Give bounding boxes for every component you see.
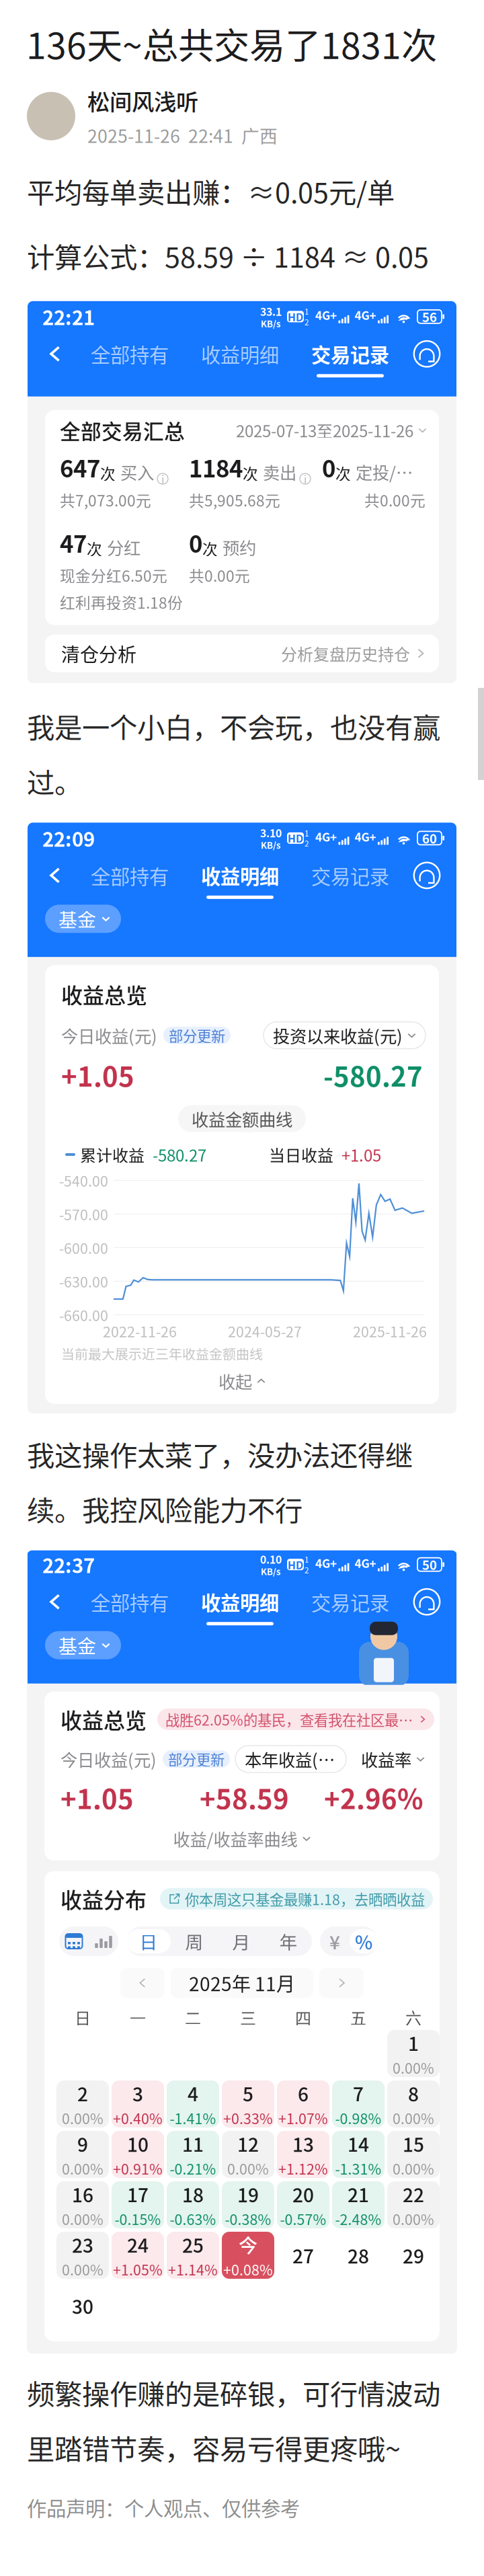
staticText: -0.57% — [280, 2208, 326, 2229]
staticText: KB/s — [261, 838, 281, 851]
button[interactable]: 返回 — [36, 334, 75, 374]
staticText: 收益分布 — [61, 1883, 147, 1914]
staticText: 全部交易汇总 — [60, 415, 185, 445]
staticText: 1 — [305, 306, 309, 317]
staticText: 共5,905.68元 — [189, 489, 280, 511]
staticText: 你本周这只基金最赚1.18，去晒晒收益 — [185, 1888, 425, 1909]
button[interactable]: % — [350, 1929, 378, 1953]
staticText: 16 — [72, 2180, 93, 2208]
button[interactable]: 你本周这只基金最赚1.18，去晒晒收益 — [160, 1888, 433, 1910]
button[interactable]: 战胜62.05%的基民，查看我在社区最新排名 — [157, 1709, 434, 1730]
staticText: 次 — [100, 462, 116, 484]
button[interactable]: 收益明细 — [197, 1582, 283, 1622]
staticText: -1.41% — [170, 2108, 216, 2128]
staticText: 日 — [75, 2006, 91, 2029]
button[interactable]: 投资以来收益(元) — [264, 1022, 426, 1049]
staticText: 现金分红6.50元 — [60, 564, 167, 586]
staticText: -0.15% — [115, 2208, 161, 2229]
staticText: 0.00% — [393, 2057, 434, 2078]
button[interactable]: 清仓分析 — [45, 635, 439, 672]
staticText: 4G+ — [315, 306, 337, 323]
button[interactable]: 交易记录 — [307, 334, 393, 374]
staticText: 次 — [87, 537, 102, 559]
button[interactable]: 柱状图视图 — [89, 1928, 118, 1955]
staticText: ¥ — [329, 1928, 340, 1955]
staticText: 月 — [232, 1928, 250, 1954]
staticText: KB/s — [261, 1565, 281, 1578]
staticText: +58.59 — [200, 1778, 289, 1817]
button[interactable]: 全部持有 — [87, 334, 173, 374]
staticText: -0.63% — [170, 2208, 216, 2229]
staticText: 0.00% — [393, 2208, 434, 2229]
staticText: 19 — [237, 2180, 259, 2208]
button[interactable]: 收益/收益率曲线 — [173, 1826, 311, 1851]
staticText: +2.96% — [324, 1778, 424, 1817]
staticText: 11 — [182, 2130, 204, 2157]
button[interactable]: 日 — [126, 1929, 171, 1953]
button[interactable]: 收益率 — [361, 1747, 425, 1771]
staticText: 买入 — [120, 459, 154, 484]
staticText: 交易记录 — [311, 861, 389, 890]
button[interactable]: ¥ — [320, 1928, 350, 1955]
button[interactable]: 全部持有 — [87, 1582, 173, 1622]
staticText: 交易记录 — [311, 340, 389, 368]
button[interactable]: 交易记录 — [307, 855, 393, 896]
staticText: 13 — [292, 2130, 314, 2157]
staticText: 12 — [237, 2130, 259, 2157]
button[interactable]: 收益金额曲线 — [178, 1105, 306, 1132]
button[interactable]: 在线客服 — [409, 334, 444, 374]
staticText: 今日收益(元) — [61, 1023, 157, 1048]
staticText: 4G+ — [355, 1554, 376, 1571]
staticText: 共7,073.00元 — [60, 489, 151, 511]
staticText: 日 — [139, 1928, 158, 1954]
button[interactable]: 上个月 — [120, 1968, 165, 1998]
staticText: 次 — [335, 462, 351, 484]
button[interactable]: 周 — [171, 1928, 218, 1955]
button[interactable]: 在线客服 — [409, 855, 444, 896]
button[interactable]: 返回 — [36, 855, 75, 896]
button[interactable]: 全部持有 — [87, 855, 173, 896]
button[interactable]: 收起 — [218, 1369, 266, 1393]
staticText: 50 — [422, 1555, 437, 1574]
staticText: 9 — [77, 2130, 88, 2157]
button[interactable]: 收益明细 — [197, 855, 283, 896]
staticText: 0.00% — [62, 2158, 104, 2179]
staticText: 清仓分析 — [61, 640, 136, 667]
staticText: 29 — [403, 2242, 424, 2269]
button[interactable]: 基金 — [45, 1631, 121, 1659]
staticText: -570.00 — [59, 1204, 108, 1224]
staticText: -540.00 — [59, 1170, 108, 1191]
staticText: 四 — [295, 2006, 311, 2029]
staticText: 1 — [305, 1553, 309, 1565]
staticText: 卖出 — [263, 459, 296, 484]
staticText: 六 — [405, 2006, 421, 2029]
staticText: 22:09 — [42, 824, 95, 852]
button[interactable]: 2025-07-13至2025-11-26 — [236, 419, 427, 442]
staticText: 5 — [243, 2080, 253, 2107]
staticText: 续。我控风险能力不行 — [27, 1489, 302, 1529]
staticText: 年 — [279, 1928, 297, 1954]
staticText: 全部持有 — [91, 340, 169, 368]
staticText: +1.05 — [61, 1778, 134, 1817]
button[interactable]: 月 — [218, 1928, 265, 1955]
staticText: 25 — [182, 2231, 204, 2258]
staticText: 33.1 — [260, 303, 282, 319]
staticText: 647 — [60, 450, 100, 484]
staticText: 10 — [127, 2130, 149, 2157]
staticText: 4G+ — [315, 1554, 337, 1571]
button[interactable]: 基金 — [45, 905, 121, 933]
staticText: +1.05% — [113, 2259, 163, 2280]
staticText: -660.00 — [59, 1304, 108, 1325]
button[interactable]: 下个月 — [319, 1968, 364, 1998]
button[interactable]: 收益明细 — [197, 334, 283, 374]
button[interactable]: 在线客服 — [409, 1582, 444, 1622]
staticText: 本年收益(元) — [245, 1747, 337, 1771]
staticText: 27 — [292, 2242, 314, 2269]
button[interactable]: 交易记录 — [307, 1582, 393, 1622]
staticText: KB/s — [261, 317, 281, 330]
button[interactable]: 返回 — [36, 1582, 75, 1622]
staticText: 收益总览 — [61, 979, 147, 1010]
staticText: 今 — [239, 2231, 257, 2258]
button[interactable]: 日历视图 — [59, 1928, 89, 1955]
button[interactable]: 年 — [265, 1928, 312, 1955]
